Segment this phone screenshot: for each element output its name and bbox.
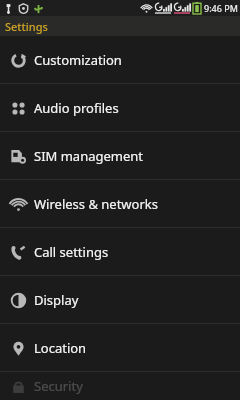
- staticText: Audio profiles: [34, 99, 119, 117]
- button[interactable]: SIM management: [0, 132, 240, 179]
- staticText: Settings: [5, 19, 48, 34]
- staticText: Wireless & networks: [34, 195, 158, 213]
- staticText: 9:46 PM: [204, 2, 238, 14]
- staticText: Call settings: [34, 243, 109, 261]
- button[interactable]: Security: [0, 372, 240, 400]
- staticText: SIM management: [34, 147, 144, 165]
- button[interactable]: Customization: [0, 36, 240, 83]
- staticText: Location: [34, 339, 87, 357]
- staticText: Security: [34, 377, 83, 395]
- staticText: Display: [34, 291, 79, 309]
- button[interactable]: Location: [0, 324, 240, 371]
- button[interactable]: Wireless & networks: [0, 180, 240, 227]
- button[interactable]: Display: [0, 276, 240, 323]
- button[interactable]: Call settings: [0, 228, 240, 275]
- staticText: Customization: [34, 51, 122, 69]
- button[interactable]: Audio profiles: [0, 84, 240, 131]
